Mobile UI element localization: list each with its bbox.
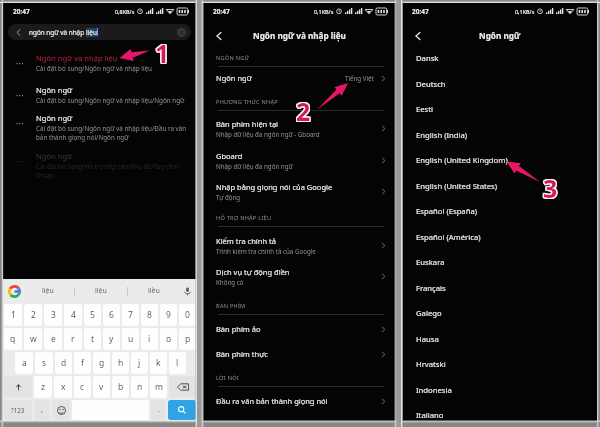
button[interactable]: 1: [4, 304, 22, 326]
button[interactable]: Hrvatski: [402, 355, 597, 373]
button[interactable]: Euskara: [402, 253, 597, 271]
staticText: •••: [16, 158, 25, 165]
staticText: Deutsch: [416, 79, 446, 89]
staticText: 3: [544, 170, 559, 204]
button[interactable]: Indonesia: [402, 381, 597, 399]
button[interactable]: Backspace: [169, 376, 196, 398]
staticText: Tiếng Việt: [345, 74, 374, 82]
button[interactable]: 6: [103, 304, 120, 326]
button[interactable]: •••: [3, 113, 197, 142]
staticText: liệu: [42, 286, 54, 296]
button[interactable]: Deutsch: [402, 75, 597, 93]
button[interactable]: i: [141, 328, 158, 350]
button[interactable]: x: [54, 376, 72, 398]
button[interactable]: z: [34, 376, 52, 398]
staticText: English (United States): [416, 181, 498, 191]
button[interactable]: 0: [179, 304, 196, 326]
staticText: Ngôn ngữ: [479, 30, 521, 41]
button[interactable]: Français: [402, 279, 597, 297]
button[interactable]: Español (América): [402, 228, 597, 246]
button[interactable]: e: [44, 328, 62, 350]
button[interactable]: •••: [3, 151, 197, 180]
button[interactable]: b: [112, 376, 129, 398]
button[interactable]: Back: [211, 28, 226, 43]
button[interactable]: k: [150, 352, 167, 374]
staticText: 20:47: [13, 7, 30, 16]
button[interactable]: Ngôn ngữ: [203, 69, 396, 87]
button[interactable]: Back: [410, 28, 425, 43]
button[interactable]: ,: [34, 400, 50, 420]
button[interactable]: English (United Kingdom): [402, 151, 597, 169]
button[interactable]: h: [112, 352, 129, 374]
staticText: 2: [297, 94, 312, 128]
button[interactable]: Gboard: [203, 149, 396, 171]
button[interactable]: Emoji: [52, 400, 70, 420]
button[interactable]: r: [64, 328, 82, 350]
button[interactable]: Nhập bằng giọng nói của Google: [203, 180, 396, 202]
button[interactable]: Galego: [402, 304, 597, 322]
button[interactable]: Dansk: [402, 49, 597, 67]
button[interactable]: Italiano: [402, 406, 597, 424]
button[interactable]: g: [93, 352, 110, 374]
button[interactable]: Hausa: [402, 330, 597, 348]
button[interactable]: q: [4, 328, 22, 350]
button[interactable]: ngôn ngữ và nhập: [8, 24, 191, 40]
staticText: HỖ TRỢ NHẬP LIỆU: [216, 214, 272, 222]
button[interactable]: s: [35, 352, 53, 374]
button[interactable]: Español (España): [402, 202, 597, 220]
button[interactable]: English (United States): [402, 177, 597, 195]
button[interactable]: l: [169, 352, 186, 374]
button[interactable]: .: [151, 400, 166, 420]
button[interactable]: •••: [3, 53, 197, 73]
button[interactable]: •••: [3, 85, 197, 105]
button[interactable]: u: [122, 328, 139, 350]
button[interactable]: c: [74, 376, 91, 398]
button[interactable]: w: [24, 328, 42, 350]
staticText: 20:47: [213, 7, 230, 16]
button[interactable]: 4: [64, 304, 82, 326]
button[interactable]: m: [150, 376, 167, 398]
staticText: Ngôn ngữ: [36, 151, 73, 161]
button[interactable]: Eesti: [402, 100, 597, 118]
button[interactable]: Bàn phím ảo: [203, 320, 396, 338]
button[interactable]: English (India): [402, 126, 597, 144]
button[interactable]: Search: [168, 400, 196, 420]
button[interactable]: y: [103, 328, 120, 350]
button[interactable]: d: [55, 352, 72, 374]
button[interactable]: Bàn phím hiện tại: [203, 117, 396, 139]
staticText: 3: [543, 170, 558, 204]
button[interactable]: Google: [7, 284, 21, 298]
staticText: Hrvatski: [416, 359, 446, 369]
button[interactable]: 9: [160, 304, 177, 326]
button[interactable]: j: [131, 352, 148, 374]
button[interactable]: 5: [84, 304, 101, 326]
staticText: Ngôn ngữ: [36, 113, 73, 123]
button[interactable]: o: [160, 328, 177, 350]
button[interactable]: Voice input: [180, 287, 194, 296]
staticText: Français: [416, 283, 446, 293]
staticText: Ngôn ngữ và nhập liệu: [36, 53, 118, 63]
staticText: 1: [11, 309, 16, 321]
button[interactable]: p: [179, 328, 196, 350]
button[interactable]: ?123: [4, 400, 32, 420]
button[interactable]: Kiểm tra chính tả: [203, 234, 396, 256]
button[interactable]: n: [131, 376, 148, 398]
button[interactable]: v: [93, 376, 110, 398]
button[interactable]: f: [74, 352, 91, 374]
button[interactable]: 7: [122, 304, 139, 326]
button[interactable]: Dịch vụ tự động điền: [203, 265, 396, 287]
button[interactable]: t: [84, 328, 101, 350]
staticText: English (United Kingdom): [416, 155, 508, 165]
staticText: Español (España): [416, 206, 478, 216]
button[interactable]: 3: [44, 304, 62, 326]
staticText: s: [42, 357, 47, 369]
button[interactable]: 8: [141, 304, 158, 326]
button[interactable]: Bàn phím thực: [203, 345, 396, 363]
button[interactable]: Đầu ra văn bản thành giọng nói: [203, 392, 396, 410]
staticText: liệu: [86, 28, 97, 37]
staticText: Indonesia: [416, 385, 452, 395]
button[interactable]: 2: [24, 304, 42, 326]
button[interactable]: a: [15, 352, 33, 374]
button[interactable]: Shift: [4, 376, 32, 398]
